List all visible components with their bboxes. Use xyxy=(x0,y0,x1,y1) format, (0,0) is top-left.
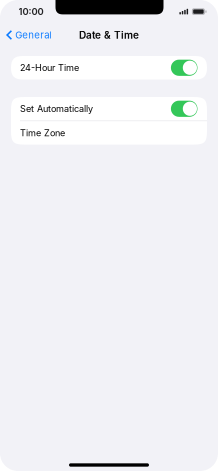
button[interactable]: Set Automatically xyxy=(11,97,207,120)
button[interactable]: 24-Hour Time xyxy=(11,56,207,79)
staticText: Time Zone xyxy=(20,127,65,138)
staticText: Date & Time xyxy=(79,29,139,41)
staticText: Set Automatically xyxy=(20,103,93,114)
staticText: General xyxy=(15,29,51,41)
staticText: 24-Hour Time xyxy=(20,62,79,73)
button[interactable]: General xyxy=(0,26,56,44)
button[interactable]: Time Zone xyxy=(11,121,207,145)
staticText: 10:00 xyxy=(18,6,43,17)
